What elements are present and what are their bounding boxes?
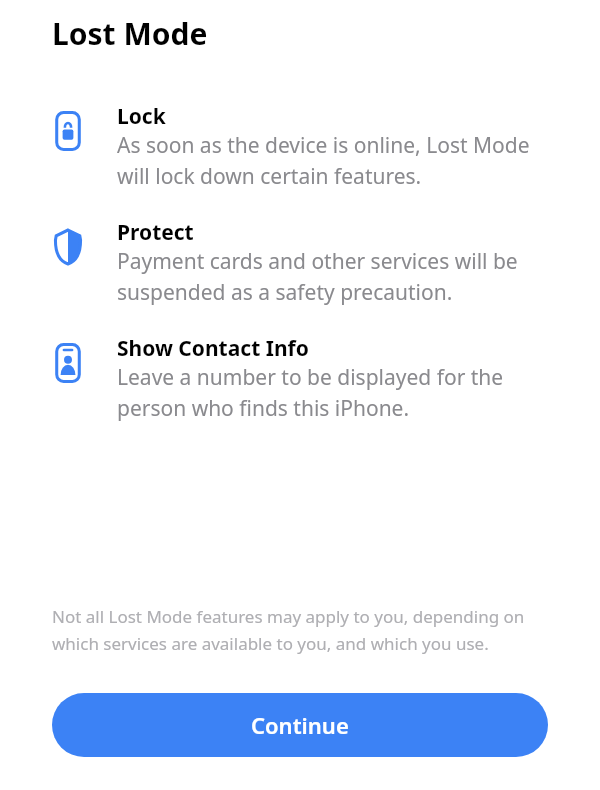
staticText: Payment cards and other services will be… xyxy=(117,247,560,306)
other: Protect xyxy=(52,226,84,268)
other: Show contact info xyxy=(52,342,84,384)
staticText: Protect xyxy=(117,218,194,247)
staticText: Continue xyxy=(251,710,349,740)
other: Lock xyxy=(52,110,84,152)
staticText: Leave a number to be displayed for the p… xyxy=(117,363,560,422)
staticText: Lost Mode xyxy=(52,13,208,54)
staticText: As soon as the device is online, Lost Mo… xyxy=(117,131,560,190)
staticText: Show Contact Info xyxy=(117,334,309,363)
staticText: Not all Lost Mode features may apply to … xyxy=(52,605,554,655)
button[interactable]: Continue xyxy=(52,693,548,757)
staticText: Lock xyxy=(117,102,166,131)
